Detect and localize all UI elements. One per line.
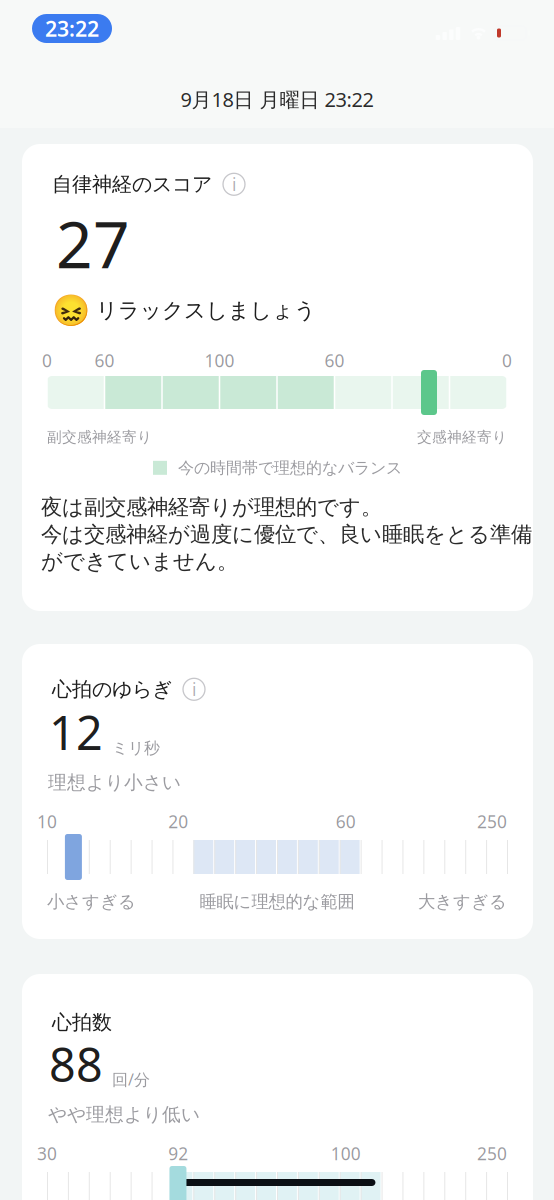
staticText: 今は交感神経が過度に優位で、良い睡眠をとる準備 (41, 521, 532, 547)
staticText: i (192, 678, 196, 701)
staticText: 交感神経寄り (417, 428, 507, 446)
staticText: 30 (37, 1142, 57, 1165)
staticText: 0 (42, 349, 52, 372)
staticText: 0 (502, 349, 512, 372)
staticText: 副交感神経寄り (47, 428, 152, 446)
staticText: 20 (168, 810, 188, 833)
staticText: 😖 (52, 293, 90, 328)
staticText: 心拍数 (52, 1010, 112, 1035)
staticText: 92 (168, 1142, 188, 1165)
staticText: 大きすぎる (418, 891, 507, 912)
staticText: 回/分 (112, 1069, 150, 1090)
staticText: ミリ秒 (112, 738, 160, 758)
staticText: 88 (49, 1033, 103, 1095)
staticText: リラックスしましょう (96, 297, 316, 324)
staticText: 心拍のゆらぎ (52, 677, 172, 702)
button[interactable]: 心拍のゆらぎ (52, 677, 205, 702)
button[interactable]: Recording indicator, 23:22 (32, 14, 112, 43)
staticText: 夜は副交感神経寄りが理想的です。 (41, 494, 382, 520)
staticText: 理想より小さい (48, 771, 181, 794)
staticText: i (232, 173, 236, 196)
staticText: 12 (49, 701, 103, 763)
staticText: 27 (56, 201, 130, 286)
staticText: 今の時間帯で理想的なバランス (178, 458, 402, 478)
staticText: 10 (37, 810, 57, 833)
staticText: 250 (477, 1142, 507, 1165)
staticText: 100 (331, 1142, 361, 1165)
staticText: 小さすぎる (47, 891, 136, 912)
staticText: 100 (204, 349, 234, 372)
staticText: 9月18日 月曜日 23:22 (180, 86, 373, 113)
staticText: やや理想より低い (48, 1103, 200, 1126)
staticText: 23:22 (45, 14, 99, 43)
button[interactable]: 自律神経のスコア (52, 172, 245, 197)
staticText: 60 (336, 810, 356, 833)
staticText: 60 (94, 349, 114, 372)
staticText: 睡眠に理想的な範囲 (199, 891, 354, 912)
staticText: 60 (324, 349, 344, 372)
staticText: ができていません。 (41, 548, 238, 575)
staticText: 自律神経のスコア (52, 172, 212, 197)
staticText: 250 (477, 810, 507, 833)
